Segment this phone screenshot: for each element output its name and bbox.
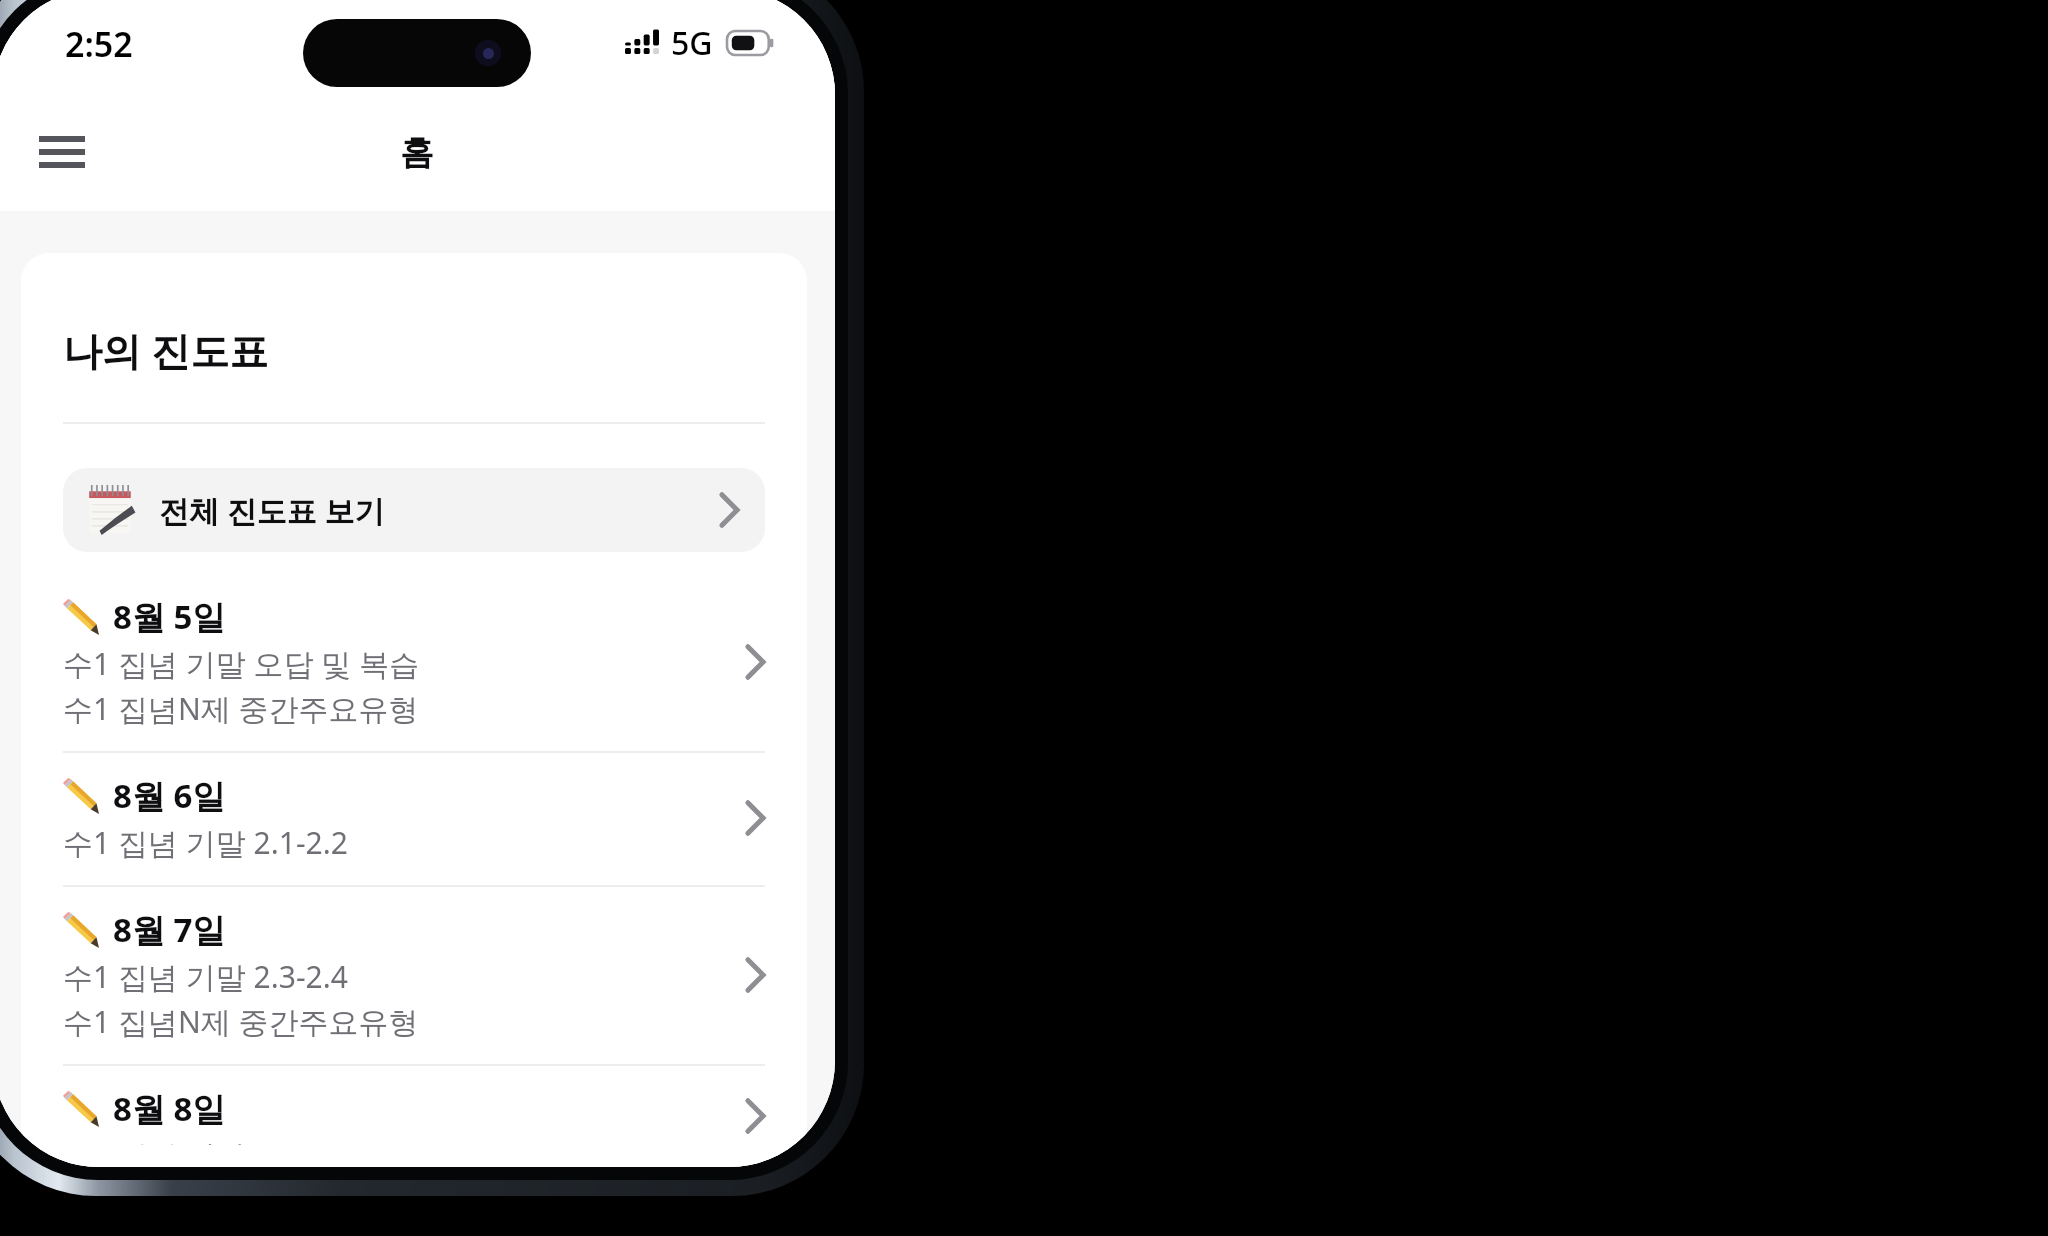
button[interactable]: Menu	[19, 109, 105, 195]
staticText: 8월 6일	[113, 773, 226, 818]
staticText: 5G	[671, 21, 713, 65]
staticText: 수1 집념 기말 2.3-2.4	[63, 956, 348, 997]
staticText: 8월 8일	[113, 1086, 226, 1131]
staticText: 수1 집념 기말 2.1-2.2	[63, 822, 348, 863]
staticText: 전체 진도표 보기	[159, 490, 385, 531]
staticText: 수1 집념N제 중간주요유형	[63, 1001, 419, 1042]
staticText: 수1 집념 기말 2.5-2.6	[63, 1135, 348, 1145]
staticText: 홈	[400, 131, 434, 174]
button[interactable]: 8월 6일	[21, 753, 807, 885]
staticText: 수1 집념N제 중간주요유형	[63, 688, 419, 729]
button[interactable]: 8월 7일	[21, 887, 807, 1064]
button[interactable]: 8월 5일	[21, 574, 807, 751]
staticText: 나의 진도표	[63, 323, 269, 376]
staticText: 8월 5일	[113, 594, 226, 639]
staticText: 8월 7일	[113, 907, 226, 952]
button[interactable]: 8월 8일	[21, 1066, 807, 1167]
button[interactable]: 전체 진도표 보기	[63, 468, 765, 552]
staticText: 2:52	[65, 21, 133, 67]
staticText: 수1 집념 기말 오답 및 복습	[63, 643, 420, 684]
